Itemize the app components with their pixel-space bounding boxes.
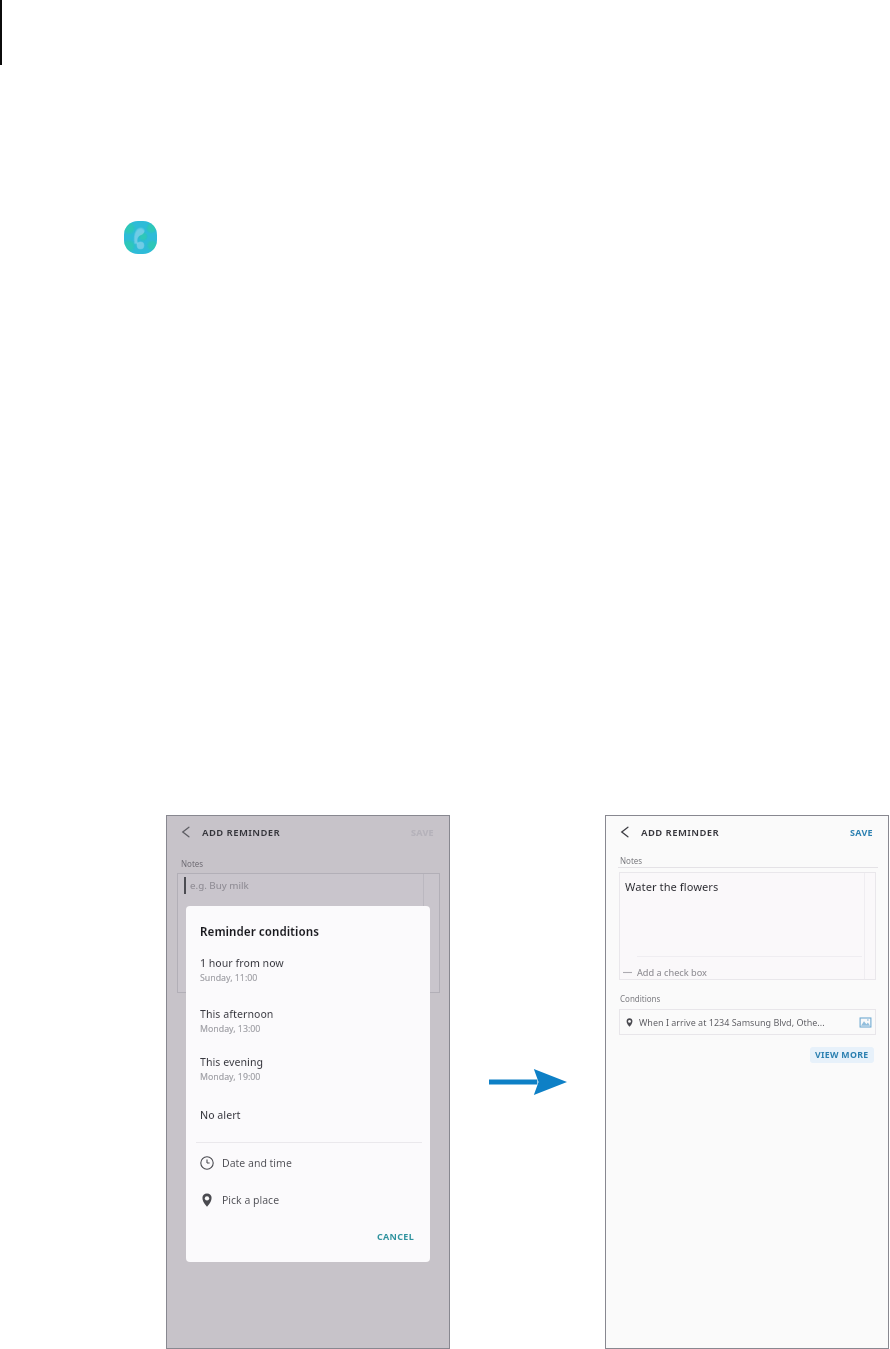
staticText: Sunday, 11:00 (200, 972, 258, 984)
button[interactable]: This evening (186, 1055, 430, 1083)
button[interactable]: This afternoon (186, 1007, 430, 1035)
staticText: ADD REMINDER (202, 826, 281, 839)
button[interactable]: Back (178, 825, 192, 839)
staticText: When I arrive at 1234 Samsung Blvd, Othe… (639, 1016, 855, 1028)
staticText: 1 hour from now (200, 956, 284, 970)
button[interactable]: CANCEL (371, 1226, 420, 1246)
staticText: Conditions (620, 993, 661, 1004)
button[interactable]: Date and time (186, 1152, 430, 1174)
button[interactable]: Back (617, 825, 631, 839)
staticText: Add a check box (637, 966, 707, 979)
button[interactable]: Reminder app icon (124, 221, 157, 254)
staticText: Notes (620, 855, 643, 866)
staticText: Date and time (222, 1156, 292, 1170)
staticText: SAVE (411, 826, 434, 838)
button[interactable]: No alert (186, 1106, 430, 1124)
staticText: No alert (200, 1108, 241, 1122)
staticText: Monday, 19:00 (200, 1071, 261, 1083)
staticText: ADD REMINDER (641, 826, 720, 839)
staticText: Pick a place (222, 1193, 280, 1207)
staticText: Reminder conditions (200, 924, 319, 940)
staticText: This evening (200, 1055, 264, 1069)
staticText: Monday, 13:00 (200, 1023, 261, 1035)
button[interactable]: Add a check box (619, 964, 876, 980)
button[interactable]: VIEW MORE (810, 1047, 874, 1063)
button[interactable]: Show on map (858, 1015, 873, 1030)
button[interactable]: 1 hour from now (186, 956, 430, 984)
button[interactable]: When I arrive at 1234 Samsung Blvd, Othe… (619, 1009, 876, 1035)
staticText: e.g. Buy milk (190, 879, 249, 892)
button[interactable]: SAVE (844, 822, 879, 842)
staticText: This afternoon (200, 1007, 274, 1021)
staticText: CANCEL (377, 1230, 414, 1242)
button[interactable]: Pick a place (186, 1189, 430, 1211)
staticText: VIEW MORE (815, 1049, 869, 1061)
button[interactable]: SAVE (405, 822, 440, 842)
staticText: SAVE (850, 826, 873, 838)
staticText: Notes (181, 858, 204, 869)
staticText: Water the flowers (625, 879, 719, 894)
